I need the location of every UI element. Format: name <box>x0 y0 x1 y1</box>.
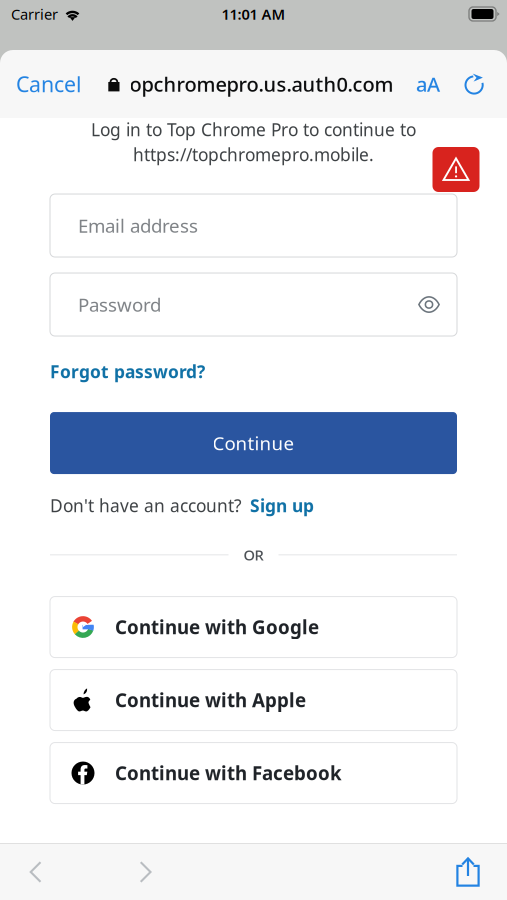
staticText: Carrier <box>11 4 58 24</box>
button[interactable]: Reload <box>455 55 494 113</box>
button[interactable]: Forgot password? <box>50 360 205 383</box>
staticText: 11:01 AM <box>221 4 285 24</box>
staticText: Forgot password? <box>50 360 205 383</box>
button[interactable]: Continue with Google <box>50 596 457 657</box>
button[interactable]: Password <box>50 273 457 336</box>
button[interactable]: Back <box>0 844 72 900</box>
staticText: opchromepro.us.auth0.com <box>129 71 393 97</box>
button[interactable]: Share <box>432 844 504 900</box>
staticText: Continue with Google <box>115 615 319 639</box>
staticText: Email address <box>78 213 198 238</box>
staticText: Sign up <box>250 494 314 517</box>
button[interactable]: Sign up <box>242 494 314 517</box>
staticText: Don't have an account? <box>50 494 242 517</box>
button[interactable]: Email address <box>50 194 457 257</box>
staticText: Continue with Apple <box>115 688 306 712</box>
button[interactable]: Continue with Facebook <box>50 742 457 803</box>
staticText: Log in to Top Chrome Pro to continue to <box>91 118 416 141</box>
staticText: OR <box>243 545 263 565</box>
button[interactable]: Forward <box>110 844 182 900</box>
staticText: Cancel <box>16 70 82 98</box>
staticText: Continue <box>212 431 294 455</box>
staticText: Continue with Facebook <box>115 761 342 785</box>
button[interactable]: Continue with Apple <box>50 669 457 730</box>
staticText: https://topchromepro.mobile. <box>133 143 374 166</box>
button[interactable]: Cancel <box>0 55 96 113</box>
staticText: Password <box>78 292 161 317</box>
button[interactable]: Continue <box>50 412 457 474</box>
staticText: aA <box>416 71 440 97</box>
button[interactable]: Text size <box>401 55 455 113</box>
